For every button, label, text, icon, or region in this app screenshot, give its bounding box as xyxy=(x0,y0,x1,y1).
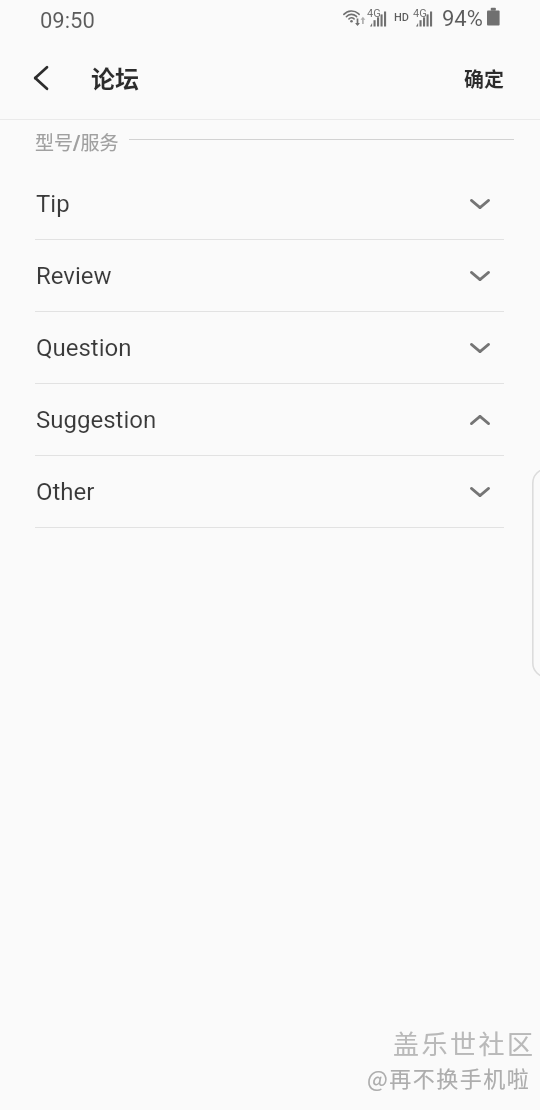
button[interactable]: Suggestion xyxy=(0,384,540,456)
button[interactable]: Other xyxy=(0,456,540,528)
staticText: Review xyxy=(36,262,112,290)
staticText: 94% xyxy=(442,6,483,32)
staticText: 09:50 xyxy=(40,8,95,34)
button[interactable]: Tip xyxy=(0,168,540,240)
staticText: 4G xyxy=(413,7,427,20)
button[interactable]: Review xyxy=(0,240,540,312)
staticText: Suggestion xyxy=(36,406,157,434)
staticText: Tip xyxy=(36,190,70,218)
staticText: HD xyxy=(394,11,409,24)
staticText: 确定 xyxy=(464,64,504,93)
staticText: 4G xyxy=(367,7,381,20)
button[interactable]: Question xyxy=(0,312,540,384)
button[interactable]: Back xyxy=(16,54,64,102)
staticText: Question xyxy=(36,334,132,362)
staticText: @再不换手机啦 xyxy=(367,1061,531,1093)
staticText: Other xyxy=(36,478,95,506)
staticText: 论坛 xyxy=(91,60,139,95)
staticText: 型号/服务 xyxy=(35,128,119,156)
button[interactable]: 确定 xyxy=(446,50,540,107)
staticText: 盖乐世社区 xyxy=(393,1024,536,1062)
